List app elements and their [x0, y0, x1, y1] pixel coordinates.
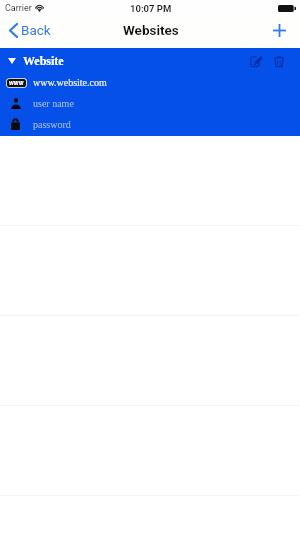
staticText: 10:07 PM	[130, 3, 172, 14]
button[interactable]: Add	[266, 20, 293, 41]
staticText: www.website.com	[33, 77, 107, 88]
button[interactable]: Delete	[273, 55, 285, 68]
staticText: user name	[33, 98, 74, 109]
button[interactable]: user name	[0, 93, 300, 114]
button[interactable]: Website	[0, 54, 64, 67]
staticText: Websites	[123, 22, 179, 38]
staticText: Back	[21, 22, 51, 38]
staticText: Carrier	[5, 3, 32, 14]
button[interactable]: WWW	[0, 72, 300, 93]
button[interactable]: Back	[0, 18, 61, 42]
button[interactable]: password	[0, 114, 300, 135]
staticText: WWW	[9, 80, 24, 86]
staticText: password	[33, 119, 71, 130]
button[interactable]: Edit	[249, 55, 263, 68]
staticText: Website	[23, 54, 64, 67]
